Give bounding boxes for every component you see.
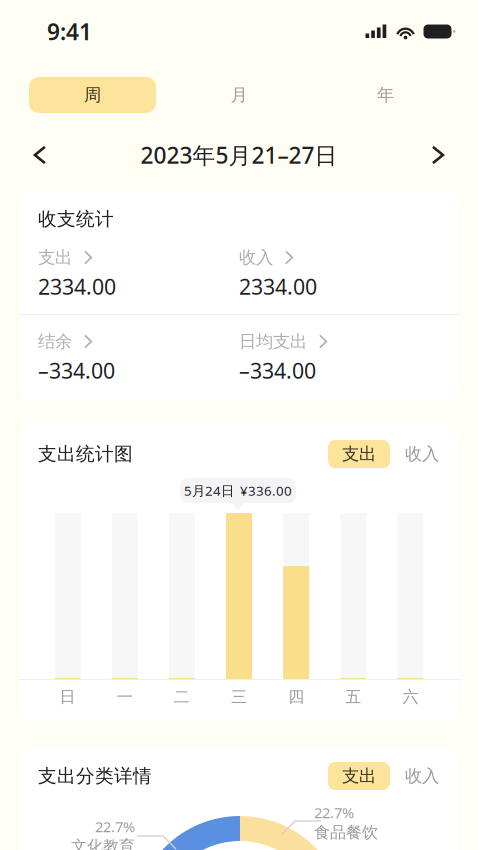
staticText: 日	[60, 687, 76, 707]
button[interactable]: 日均支出	[239, 333, 440, 379]
staticText: 9:41	[47, 16, 92, 46]
staticText: 五	[345, 687, 361, 707]
staticText: 二	[174, 687, 190, 707]
staticText: –334.00	[38, 356, 115, 385]
button[interactable]: 周	[29, 77, 156, 113]
staticText: –334.00	[239, 356, 316, 385]
staticText: 四	[288, 687, 304, 707]
staticText: 收入	[239, 247, 273, 268]
staticText: 支出分类详情	[38, 764, 152, 787]
button[interactable]: 支出	[328, 440, 390, 468]
staticText: 2334.00	[38, 272, 116, 301]
button[interactable]: 收入	[402, 440, 442, 468]
button[interactable]: 支出	[38, 249, 239, 295]
staticText: 月	[230, 84, 247, 106]
staticText: 22.7%	[95, 817, 135, 836]
staticText: 2023年5月21–27日	[140, 140, 337, 170]
button[interactable]: 收入	[402, 762, 442, 790]
staticText: 22.7%	[314, 803, 354, 822]
staticText: 三	[231, 687, 247, 707]
staticText: 支出	[342, 443, 376, 465]
button[interactable]: 收入	[239, 249, 440, 295]
staticText: 六	[402, 687, 418, 707]
staticText: 食品餐饮	[314, 823, 378, 842]
staticText: 收入	[405, 443, 439, 465]
button[interactable]: 年	[322, 77, 449, 113]
staticText: 5月24日 ¥336.00	[184, 482, 292, 499]
staticText: 一	[117, 687, 133, 707]
button[interactable]: 月	[175, 77, 302, 113]
staticText: 周	[84, 84, 101, 106]
button[interactable]: 结余	[38, 333, 239, 379]
staticText: 收支统计	[38, 207, 114, 230]
button[interactable]: Next period	[416, 133, 460, 177]
staticText: 支出	[38, 247, 72, 268]
button[interactable]: 支出	[328, 762, 390, 790]
button[interactable]: Previous period	[18, 133, 62, 177]
staticText: 支出	[342, 765, 376, 787]
staticText: 日均支出	[239, 331, 307, 352]
staticText: 年	[377, 84, 394, 106]
staticText: 结余	[38, 331, 72, 352]
staticText: 2334.00	[239, 272, 317, 301]
staticText: 支出统计图	[38, 442, 133, 465]
staticText: 文化教育	[71, 837, 135, 850]
staticText: 收入	[405, 765, 439, 787]
